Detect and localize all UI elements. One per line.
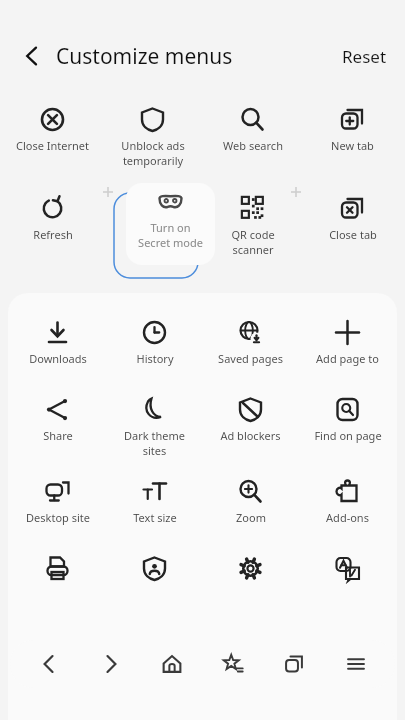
button[interactable]: [107, 552, 202, 587]
button[interactable]: Bookmarks: [211, 642, 255, 686]
button[interactable]: Zoom: [203, 475, 298, 525]
button[interactable]: QR code scanner: [205, 192, 300, 257]
staticText: Text size: [133, 510, 177, 525]
staticText: Downloads: [29, 351, 87, 366]
staticText: Dark theme sites: [124, 428, 185, 458]
button[interactable]: Close Internet: [5, 103, 100, 153]
button[interactable]: Share: [10, 393, 105, 443]
staticText: Refresh: [33, 227, 73, 242]
staticText: Unblock ads temporarily: [121, 138, 185, 168]
button[interactable]: Reset: [336, 37, 393, 76]
button[interactable]: History: [107, 316, 202, 366]
staticText: New tab: [331, 138, 374, 153]
staticText: History: [136, 351, 174, 366]
button[interactable]: Back: [12, 36, 52, 76]
button[interactable]: Forward: [89, 642, 133, 686]
button[interactable]: Menu: [334, 642, 378, 686]
staticText: Close Internet: [16, 138, 89, 153]
button[interactable]: Unblock ads temporarily: [105, 103, 200, 168]
button[interactable]: Web search: [205, 103, 300, 153]
button[interactable]: Home: [150, 642, 194, 686]
button[interactable]: Add-ons: [300, 475, 395, 525]
staticText: Reset: [342, 45, 387, 68]
button[interactable]: [10, 552, 105, 587]
staticText: Zoom: [236, 510, 266, 525]
button[interactable]: Desktop site: [10, 475, 105, 525]
button[interactable]: Ad blockers: [203, 393, 298, 443]
button[interactable]: Back: [27, 642, 71, 686]
staticText: Add page to: [316, 351, 379, 366]
staticText: Find on page: [314, 428, 382, 443]
button[interactable]: Refresh: [5, 192, 100, 242]
button[interactable]: Close tab: [305, 192, 400, 242]
staticText: QR code scanner: [231, 227, 275, 257]
button[interactable]: Downloads: [10, 316, 105, 366]
button[interactable]: Turn on Secret mode: [126, 183, 215, 265]
staticText: Web search: [223, 138, 283, 153]
staticText: Add-ons: [326, 510, 369, 525]
button[interactable]: Dark theme sites: [107, 393, 202, 458]
button[interactable]: Add page to: [300, 316, 395, 366]
staticText: Ad blockers: [220, 428, 281, 443]
staticText: Saved pages: [218, 351, 283, 366]
staticText: Turn on Secret mode: [138, 220, 203, 250]
button[interactable]: Find on page: [300, 393, 395, 443]
staticText: Desktop site: [26, 510, 90, 525]
button[interactable]: Tabs: [272, 642, 316, 686]
button[interactable]: [300, 552, 395, 587]
button[interactable]: [203, 552, 298, 587]
staticText: Share: [43, 428, 73, 443]
staticText: Customize menus: [56, 42, 233, 71]
button[interactable]: New tab: [305, 103, 400, 153]
staticText: Close tab: [329, 227, 377, 242]
button[interactable]: Saved pages: [203, 316, 298, 366]
button[interactable]: Text size: [107, 475, 202, 525]
